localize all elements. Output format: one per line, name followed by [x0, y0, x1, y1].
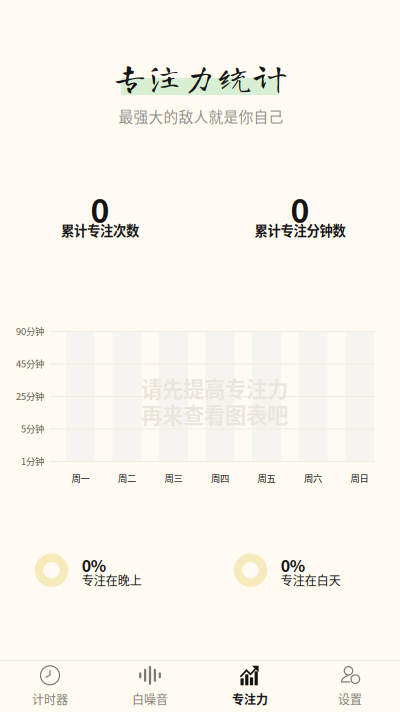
button[interactable]: 专注力	[200, 661, 300, 712]
staticText: 25分钟	[16, 389, 44, 403]
staticText: 1分钟	[21, 454, 44, 468]
staticText: 专注力统计	[112, 60, 287, 94]
staticText: 5分钟	[21, 422, 44, 435]
staticText: 0	[90, 186, 109, 232]
staticText: 90分钟	[16, 324, 44, 338]
staticText: 专注力	[232, 690, 268, 708]
button[interactable]: 白噪音	[100, 661, 200, 712]
staticText: 周五	[257, 471, 275, 485]
staticText: 0%	[82, 553, 106, 577]
staticText: 最强大的敌人就是你自己	[118, 105, 283, 127]
staticText: 周日	[350, 471, 368, 485]
button[interactable]: 0	[0, 194, 200, 240]
staticText: 专注在白天	[281, 571, 341, 589]
button[interactable]: 设置	[300, 661, 400, 712]
staticText: 周二	[118, 471, 136, 485]
staticText: 累计专注次数	[61, 220, 139, 240]
staticText: 0	[290, 186, 309, 232]
button[interactable]: 0	[200, 194, 400, 240]
staticText: 周三	[164, 471, 182, 485]
staticText: 周四	[211, 471, 229, 485]
staticText: 白噪音	[132, 690, 168, 708]
staticText: 请先提高专注力	[141, 373, 288, 403]
staticText: 设置	[338, 690, 362, 708]
staticText: 周一	[71, 471, 89, 485]
button[interactable]: 计时器	[0, 661, 100, 712]
staticText: 周六	[304, 471, 322, 485]
staticText: 0%	[281, 553, 305, 577]
staticText: 累计专注分钟数	[254, 220, 345, 240]
staticText: 45分钟	[16, 357, 44, 370]
staticText: 计时器	[32, 690, 68, 708]
button[interactable]: 0%	[35, 553, 185, 587]
staticText: 再来查看图表吧	[141, 399, 288, 429]
button[interactable]: 0%	[234, 553, 384, 587]
staticText: 专注在晚上	[82, 571, 142, 589]
